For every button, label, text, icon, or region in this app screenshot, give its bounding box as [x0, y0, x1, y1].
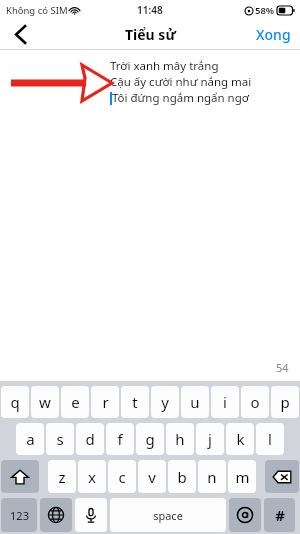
staticText: g — [145, 429, 155, 449]
staticText: q — [10, 392, 20, 412]
button[interactable]: z — [48, 460, 76, 493]
staticText: e — [71, 392, 80, 412]
staticText: o — [250, 392, 260, 412]
button[interactable]: r — [91, 386, 119, 418]
staticText: 123 — [10, 508, 29, 523]
button[interactable]: f — [106, 423, 134, 455]
staticText: k — [236, 429, 245, 449]
staticText: d — [85, 429, 95, 449]
button[interactable]: j — [196, 423, 224, 455]
button[interactable]: t — [121, 386, 149, 418]
staticText: space — [153, 508, 183, 523]
button[interactable]: Switch keyboard — [40, 498, 72, 532]
staticText: s — [56, 429, 64, 449]
staticText: Tôi đứng ngắm ngẩn ngơ — [112, 90, 249, 106]
staticText: a — [26, 429, 35, 449]
staticText: t — [132, 392, 138, 412]
button[interactable]: Dictate — [75, 498, 107, 532]
button[interactable]: # — [264, 498, 295, 532]
button[interactable]: Xong — [247, 20, 300, 49]
staticText: 58% — [255, 4, 275, 17]
staticText: h — [175, 429, 185, 449]
staticText: # — [275, 505, 285, 525]
staticText: c — [118, 467, 126, 487]
button[interactable]: l — [256, 423, 284, 455]
button[interactable]: x — [78, 460, 106, 493]
button[interactable]: s — [46, 423, 74, 455]
staticText: y — [161, 392, 169, 412]
button[interactable]: At sign — [229, 498, 261, 532]
button[interactable]: a — [16, 423, 44, 455]
button[interactable]: Back — [0, 20, 40, 49]
staticText: Cậu ấy cười như nắng mai — [110, 74, 252, 90]
button[interactable]: w — [31, 386, 59, 418]
button[interactable]: space — [110, 498, 226, 532]
staticText: Tiểu sử — [125, 25, 176, 44]
staticText: j — [208, 429, 212, 449]
staticText: f — [117, 429, 123, 449]
button[interactable]: e — [61, 386, 89, 418]
button[interactable]: q — [1, 386, 29, 418]
button[interactable]: b — [168, 460, 196, 493]
staticText: Xong — [256, 25, 291, 44]
button[interactable]: 123 — [1, 498, 37, 532]
button[interactable]: g — [136, 423, 164, 455]
staticText: v — [148, 467, 156, 487]
staticText: l — [268, 429, 272, 449]
button[interactable]: h — [166, 423, 194, 455]
staticText: m — [235, 467, 250, 487]
staticText: 11:48 — [137, 3, 163, 17]
staticText: 54 — [276, 360, 289, 375]
staticText: n — [207, 467, 217, 487]
button[interactable]: i — [211, 386, 239, 418]
staticText: r — [102, 392, 109, 412]
button[interactable]: m — [228, 460, 256, 493]
button[interactable]: o — [241, 386, 269, 418]
staticText: Không có SIM — [6, 4, 68, 17]
button[interactable]: y — [151, 386, 179, 418]
staticText: x — [88, 467, 96, 487]
staticText: u — [190, 392, 200, 412]
button[interactable]: u — [181, 386, 209, 418]
button[interactable]: k — [226, 423, 254, 455]
button[interactable]: Delete — [265, 460, 299, 493]
button[interactable]: p — [271, 386, 299, 418]
button[interactable]: d — [76, 423, 104, 455]
button[interactable]: c — [108, 460, 136, 493]
button[interactable]: n — [198, 460, 226, 493]
button[interactable]: Shift — [1, 460, 39, 493]
staticText: w — [39, 392, 51, 412]
staticText: p — [280, 392, 290, 412]
staticText: i — [223, 392, 227, 412]
button[interactable]: v — [138, 460, 166, 493]
staticText: b — [177, 467, 187, 487]
staticText: z — [58, 467, 66, 487]
staticText: Trời xanh mây trắng — [110, 58, 219, 74]
